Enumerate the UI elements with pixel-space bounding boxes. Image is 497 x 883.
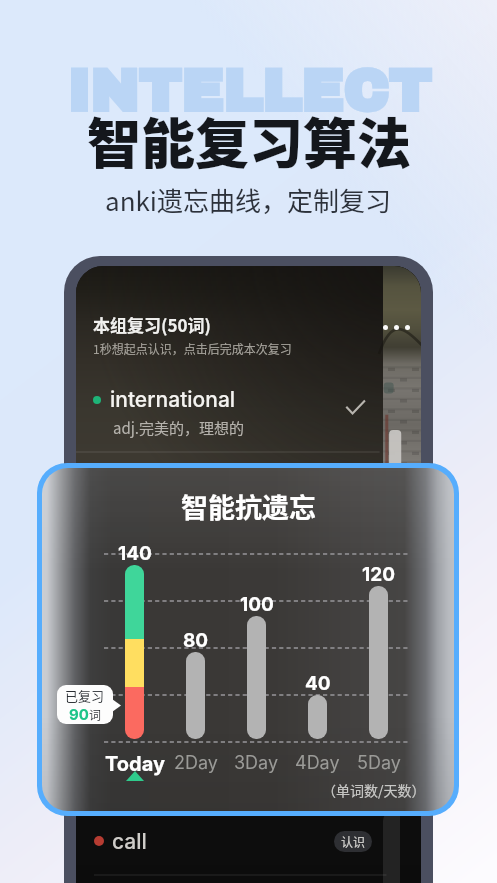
staticText: adj.完美的，理想的 [113,417,245,439]
button[interactable]: 认识 [334,831,372,852]
button[interactable]: More options [380,322,413,333]
staticText: 词 [89,706,102,723]
button[interactable]: 3Day, 100 words [247,616,266,739]
staticText: Today [105,752,165,776]
staticText: 40 [305,672,331,695]
staticText: INTELLECT [67,60,431,123]
staticText: 2Day [174,752,218,774]
staticText: 已复习 [65,686,105,705]
staticText: 智能复习算法 [87,101,411,179]
button[interactable]: Today, 140 words [125,565,144,739]
staticText: call [112,829,147,854]
staticText: 智能抗遗忘 [181,487,316,526]
staticText: 认识 [341,833,366,850]
staticText: 4Day [295,752,340,774]
staticText: 1秒想起点认识，点击后完成本次复习 [93,340,292,357]
staticText: 3Day [234,752,279,774]
staticText: 120 [362,563,395,586]
button[interactable]: Mark as known [338,391,372,425]
staticText: 5Day [357,752,401,774]
button[interactable]: 5Day, 120 words [369,586,388,739]
staticText: 140 [118,542,152,565]
staticText: （单词数/天数） [322,780,426,800]
button[interactable]: 2Day, 80 words [186,652,205,739]
staticText: 90 [69,705,89,723]
button[interactable]: 4Day, 40 words [308,695,327,739]
staticText: 100 [240,593,274,616]
staticText: 80 [183,629,209,652]
staticText: anki遗忘曲线，定制复习 [105,181,392,219]
staticText: international [110,387,236,412]
staticText: 本组复习(50词) [93,312,211,337]
button[interactable]: call [76,820,421,862]
